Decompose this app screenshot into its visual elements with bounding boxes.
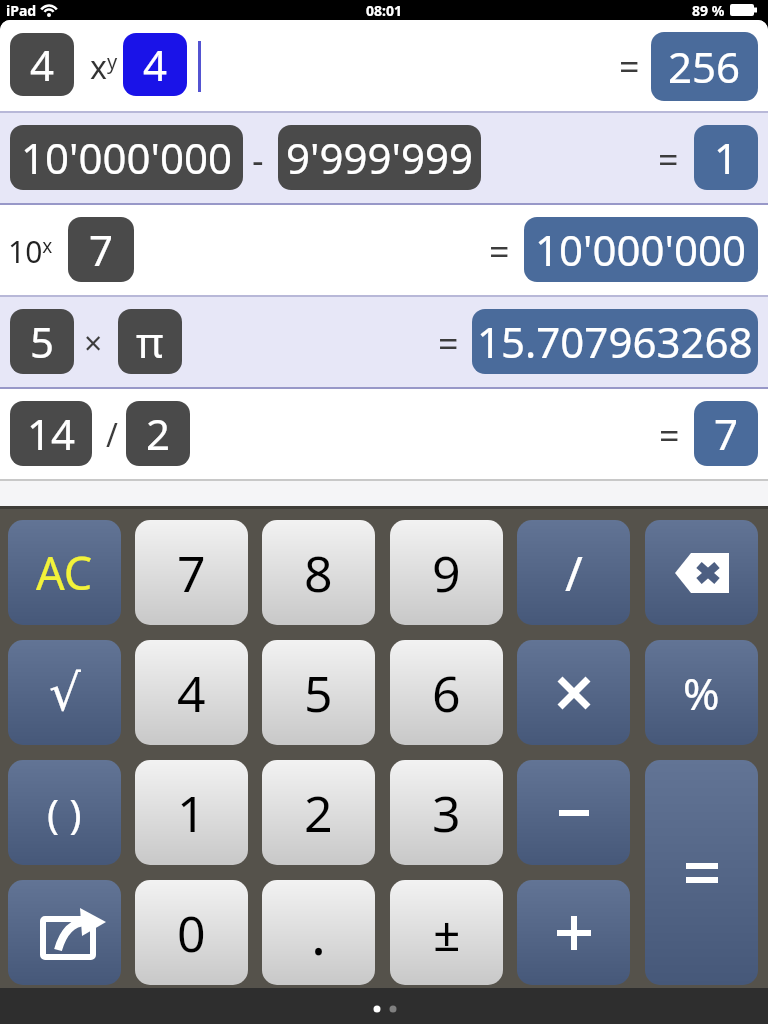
button[interactable]: 7 [694,401,758,466]
staticText: 9'999'999 [286,129,474,186]
staticText: = [438,319,459,368]
button[interactable] [8,880,121,985]
staticText: 10'000'000 [21,129,233,186]
staticText: / [565,540,583,605]
button[interactable]: 9 [390,520,503,625]
button[interactable]: 14 [10,401,92,466]
button[interactable]: 10'000'000 [10,125,243,190]
button[interactable]: 7 [68,217,134,282]
button[interactable]: 4 [123,33,187,96]
staticText: × [84,321,103,365]
staticText: AC [36,542,93,603]
staticText: . [311,895,327,971]
button[interactable] [645,520,758,625]
staticText: iPad [6,1,37,20]
button[interactable]: 1 [694,125,758,190]
button[interactable]: ± [390,880,503,985]
button[interactable]: 15.707963268 [472,309,758,374]
staticText: 15.707963268 [477,313,753,370]
button[interactable]: 6 [390,640,503,745]
staticText: - [252,135,264,184]
button[interactable] [645,760,758,985]
button[interactable]: 1 [135,760,248,865]
staticText: 1 [714,129,739,186]
staticText: 4 [30,36,55,93]
button[interactable]: √ [8,640,121,745]
staticText: = [659,411,680,460]
staticText: 08:01 [366,1,402,20]
staticText: 5 [30,313,55,370]
button[interactable]: 3 [390,760,503,865]
staticText: 7 [89,221,114,278]
staticText: 6 [432,659,461,727]
staticText: % [683,663,720,723]
button[interactable]: 10'000'000 [524,217,758,282]
button[interactable]: % [645,640,758,745]
staticText: = [658,135,679,184]
staticText: 4 [177,659,206,727]
staticText: 9 [432,539,461,607]
staticText: / [106,413,118,457]
button[interactable]: / [517,520,630,625]
button[interactable]: 5 [262,640,375,745]
staticText: ( ) [47,786,82,840]
staticText: 2 [304,779,333,847]
staticText: 0 [177,899,206,967]
button[interactable]: ( ) [8,760,121,865]
button[interactable]: 5 [10,309,74,374]
button[interactable]: 4 [135,640,248,745]
staticText: 7 [714,405,739,462]
staticText: √ [49,664,81,722]
staticText: = [619,42,640,91]
staticText: 7 [177,539,206,607]
staticText: xy [90,45,118,89]
button[interactable]: π [118,309,182,374]
button[interactable]: 7 [135,520,248,625]
staticText: 2 [146,405,171,462]
staticText: 8 [304,539,333,607]
button[interactable] [517,880,630,985]
staticText: = [489,227,510,276]
button[interactable]: AC [8,520,121,625]
button[interactable]: 0 [135,880,248,985]
button[interactable]: 256 [651,32,758,101]
staticText: 256 [668,38,741,95]
button[interactable] [517,760,630,865]
staticText: 14 [27,405,76,462]
button[interactable]: 2 [126,401,190,466]
staticText: 4 [143,36,168,93]
button[interactable]: 8 [262,520,375,625]
staticText: 10x [8,231,53,272]
staticText: 10'000'000 [535,221,747,278]
button[interactable]: 4 [10,33,74,96]
staticText: π [136,313,164,370]
staticText: 5 [304,659,333,727]
button[interactable]: . [262,880,375,985]
button[interactable] [517,640,630,745]
staticText: 1 [177,779,206,847]
staticText: ± [433,900,461,965]
button[interactable]: 2 [262,760,375,865]
staticText: 89 % [692,1,725,20]
staticText: 3 [432,779,461,847]
button[interactable]: 9'999'999 [278,125,481,190]
